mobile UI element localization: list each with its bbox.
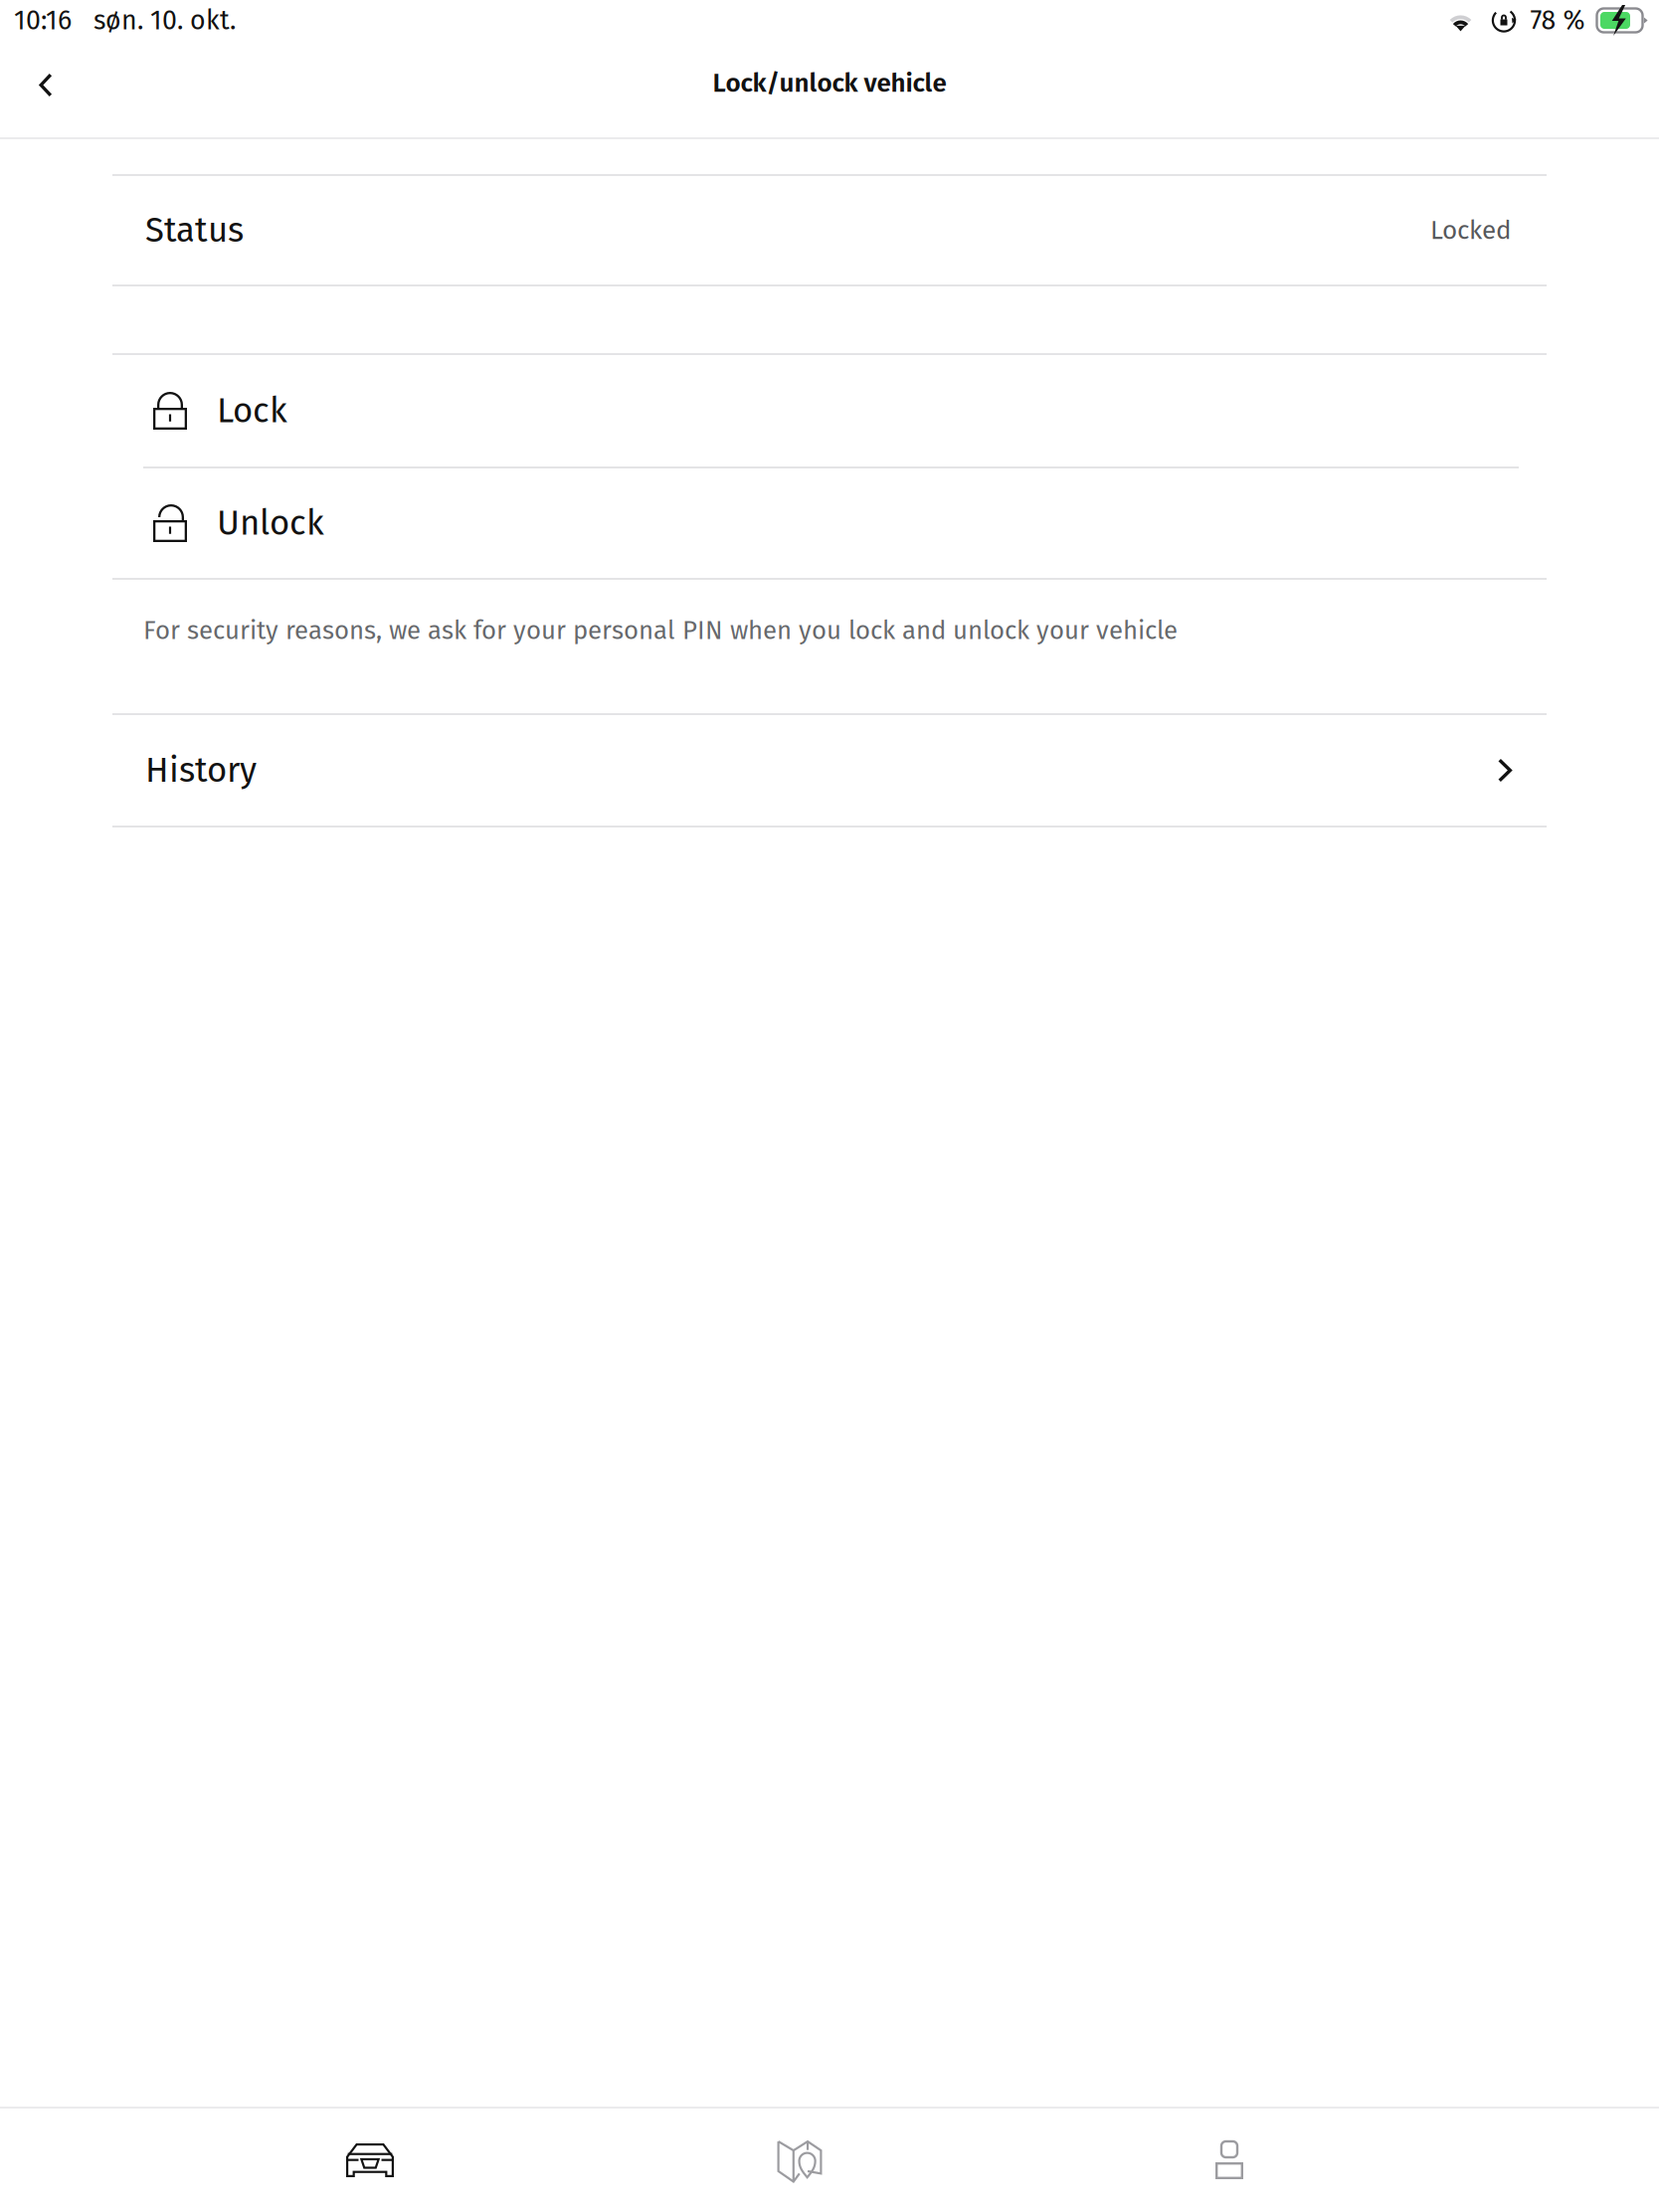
- staticText: History: [145, 750, 257, 791]
- button[interactable]: History: [0, 715, 1659, 826]
- staticText: Lock: [217, 390, 287, 431]
- button[interactable]: Unlock: [0, 468, 1659, 578]
- staticText: Status: [145, 210, 244, 251]
- button[interactable]: Vehicle: [155, 2109, 585, 2212]
- staticText: For security reasons, we ask for your pe…: [143, 615, 1178, 646]
- button[interactable]: Profile: [1014, 2109, 1444, 2212]
- staticText: søn. 10. okt.: [93, 4, 236, 36]
- button[interactable]: Map: [585, 2109, 1014, 2212]
- staticText: Locked: [1430, 215, 1512, 246]
- staticText: 78 %: [1530, 4, 1585, 36]
- button[interactable]: Back: [20, 56, 72, 114]
- staticText: Unlock: [217, 502, 324, 544]
- button[interactable]: Lock: [0, 355, 1659, 466]
- staticText: Lock/unlock vehicle: [713, 68, 946, 99]
- staticText: 10:16: [14, 4, 72, 36]
